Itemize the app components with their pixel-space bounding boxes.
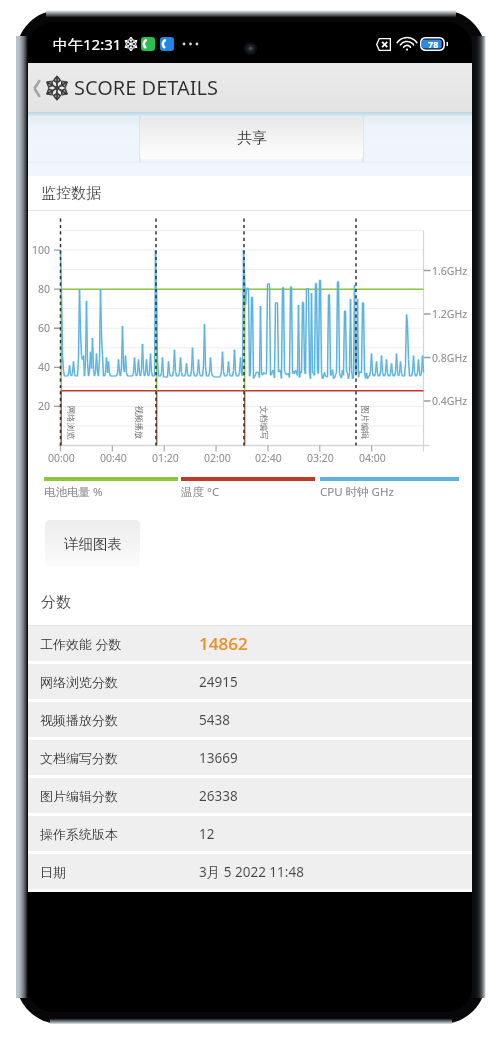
staticText: 视频播放 [132, 405, 143, 439]
staticText: 03:20 [307, 451, 334, 465]
staticText: 02:40 [255, 451, 282, 465]
staticText: 40 [38, 360, 51, 374]
staticText: 14862 [199, 632, 248, 655]
staticText: 3月 5 2022 11:48 [199, 863, 304, 881]
staticText: 1.2GHz [432, 307, 468, 321]
staticText: 100 [32, 243, 51, 257]
staticText: 监控数据 [41, 184, 101, 203]
staticText: 操作系统版本 [40, 826, 118, 842]
staticText: 78 [428, 38, 439, 50]
staticText: 0.4GHz [432, 394, 468, 408]
button[interactable]: 网络浏览分数 [28, 664, 472, 699]
button[interactable]: 图片编辑分数 [28, 778, 472, 813]
button[interactable]: 日期 [28, 854, 472, 889]
staticText: 文档编写分数 [40, 750, 118, 766]
staticText: 文档编写 [257, 405, 268, 439]
staticText: 电池电量 % [44, 484, 103, 500]
staticText: 日期 [40, 864, 66, 880]
staticText: 12 [199, 825, 215, 843]
staticText: 分数 [41, 593, 71, 612]
staticText: 图片编辑分数 [40, 788, 118, 804]
staticText: 00:40 [100, 451, 127, 465]
button[interactable]: 文档编写分数 [28, 740, 472, 775]
button[interactable]: 共享 [140, 118, 363, 159]
staticText: 1.6GHz [432, 264, 468, 278]
staticText: 26338 [199, 787, 238, 805]
staticText: 01:20 [152, 451, 179, 465]
staticText: 00:00 [48, 451, 75, 465]
staticText: 24915 [199, 673, 238, 691]
staticText: 0.8GHz [432, 351, 468, 365]
staticText: CPU 时钟 GHz [320, 484, 394, 500]
button[interactable]: 视频播放分数 [28, 702, 472, 737]
staticText: 13669 [199, 749, 238, 767]
staticText: 20 [38, 399, 51, 413]
button[interactable]: 详细图表 [45, 520, 140, 567]
staticText: 网络浏览分数 [40, 674, 118, 690]
staticText: 网络浏览 [64, 405, 75, 439]
staticText: 80 [38, 282, 51, 296]
button[interactable]: Back [30, 74, 44, 102]
staticText: 5438 [199, 711, 230, 729]
staticText: 02:00 [204, 451, 231, 465]
button[interactable]: 工作效能 分数 [28, 626, 472, 661]
staticText: 中午12:31 [53, 34, 122, 54]
staticText: 04:00 [359, 451, 386, 465]
staticText: 视频播放分数 [40, 712, 118, 728]
staticText: 60 [38, 321, 51, 335]
staticText: 温度 °C [181, 484, 220, 500]
staticText: 详细图表 [64, 535, 122, 553]
staticText: 图片编辑 [358, 405, 369, 439]
staticText: SCORE DETAILS [74, 74, 219, 101]
button[interactable]: 操作系统版本 [28, 816, 472, 851]
staticText: 共享 [237, 129, 267, 148]
staticText: 工作效能 分数 [40, 635, 122, 653]
